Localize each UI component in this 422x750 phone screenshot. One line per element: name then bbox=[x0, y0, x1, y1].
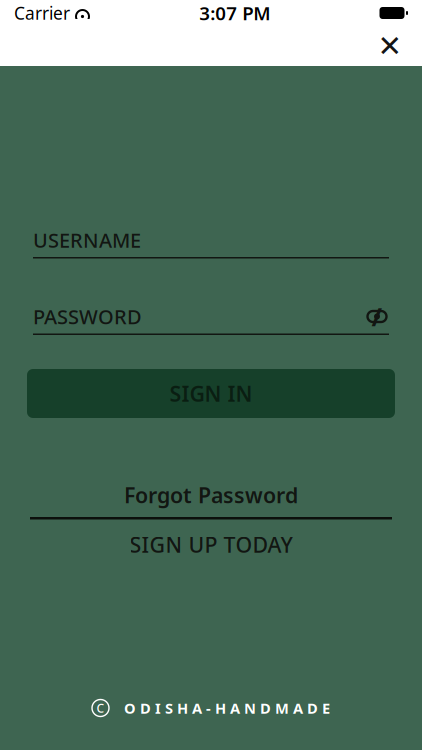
button[interactable]: USERNAME bbox=[33, 229, 389, 258]
staticText: Carrier bbox=[14, 1, 70, 24]
staticText: Forgot Password bbox=[124, 481, 298, 509]
staticText: USERNAME bbox=[33, 227, 141, 253]
staticText: PASSWORD bbox=[33, 303, 142, 330]
button[interactable]: SIGN UP TODAY bbox=[30, 531, 392, 557]
staticText: / bbox=[371, 300, 382, 333]
staticText: O D I S H A - H A N D M A D E bbox=[124, 698, 330, 718]
staticText: SIGN IN bbox=[169, 379, 252, 408]
staticText: ✕ bbox=[377, 29, 402, 63]
staticText: SIGN UP TODAY bbox=[129, 530, 292, 559]
button[interactable]: Close bbox=[368, 26, 412, 66]
button[interactable]: SIGN IN bbox=[27, 369, 395, 418]
button[interactable]: PASSWORD bbox=[33, 305, 389, 335]
button[interactable]: Forgot Password bbox=[30, 482, 392, 508]
staticText: C bbox=[96, 700, 104, 716]
staticText: 3:07 PM bbox=[199, 1, 270, 25]
